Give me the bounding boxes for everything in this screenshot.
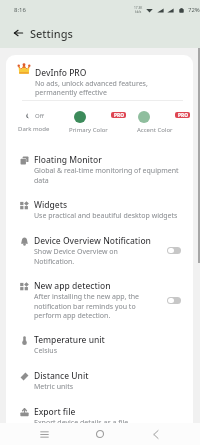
staticText: Primary Color — [69, 126, 108, 134]
staticText: Temperature unit — [34, 334, 105, 346]
button[interactable]: Back — [144, 423, 168, 445]
button[interactable]: Temperature unit — [6, 327, 193, 363]
button[interactable]: Accent Color — [138, 111, 150, 123]
staticText: Export device details as a file — [34, 418, 129, 428]
staticText: After installing the new app, the notifi… — [34, 292, 139, 320]
staticText: Use practical and beautiful desktop widg… — [34, 211, 178, 221]
staticText: Export file — [34, 406, 76, 418]
staticText: Widgets — [34, 199, 68, 211]
button[interactable]: New app detection — [6, 273, 193, 327]
button[interactable]: Widgets — [6, 192, 193, 228]
button[interactable]: Export file — [6, 399, 193, 435]
staticText: Metric units — [34, 382, 74, 392]
button[interactable]: Distance Unit — [6, 363, 193, 399]
staticText: kb/s — [135, 10, 142, 14]
staticText: Show Device Overview on Notification. — [34, 247, 118, 266]
button[interactable]: Floating Monitor — [6, 147, 193, 192]
staticText: PRO — [114, 112, 124, 118]
staticText: Settings — [30, 26, 73, 41]
staticText: Device Overview Notification — [34, 235, 151, 247]
staticText: Off — [35, 112, 44, 120]
staticText: PRO — [178, 112, 188, 118]
button[interactable]: Toggle — [167, 247, 181, 254]
staticText: Global & real-time monitoring of equipme… — [34, 166, 179, 185]
button[interactable]: Home — [88, 423, 112, 445]
staticText: 8:16 — [14, 6, 26, 14]
staticText: Distance Unit — [34, 370, 89, 382]
button[interactable]: DevInfo PRO — [6, 55, 193, 100]
staticText: Accent Color — [137, 126, 173, 134]
button[interactable]: Toggle — [167, 297, 181, 304]
staticText: Floating Monitor — [34, 154, 102, 166]
staticText: 17.3K — [134, 6, 143, 10]
button[interactable]: Primary Color — [74, 111, 86, 123]
staticText: DevInfo PRO — [35, 67, 87, 79]
staticText: Dark mode — [18, 125, 50, 133]
staticText: No ads, unlock advanced features, perman… — [35, 79, 148, 97]
button[interactable]: Back — [5, 18, 31, 47]
button[interactable]: Off — [18, 112, 50, 133]
staticText: 72% — [188, 6, 200, 14]
staticText: Celsius — [34, 346, 58, 356]
button[interactable]: Device Overview Notification — [6, 228, 193, 273]
staticText: New app detection — [34, 280, 111, 292]
button[interactable]: Recents — [32, 423, 56, 445]
